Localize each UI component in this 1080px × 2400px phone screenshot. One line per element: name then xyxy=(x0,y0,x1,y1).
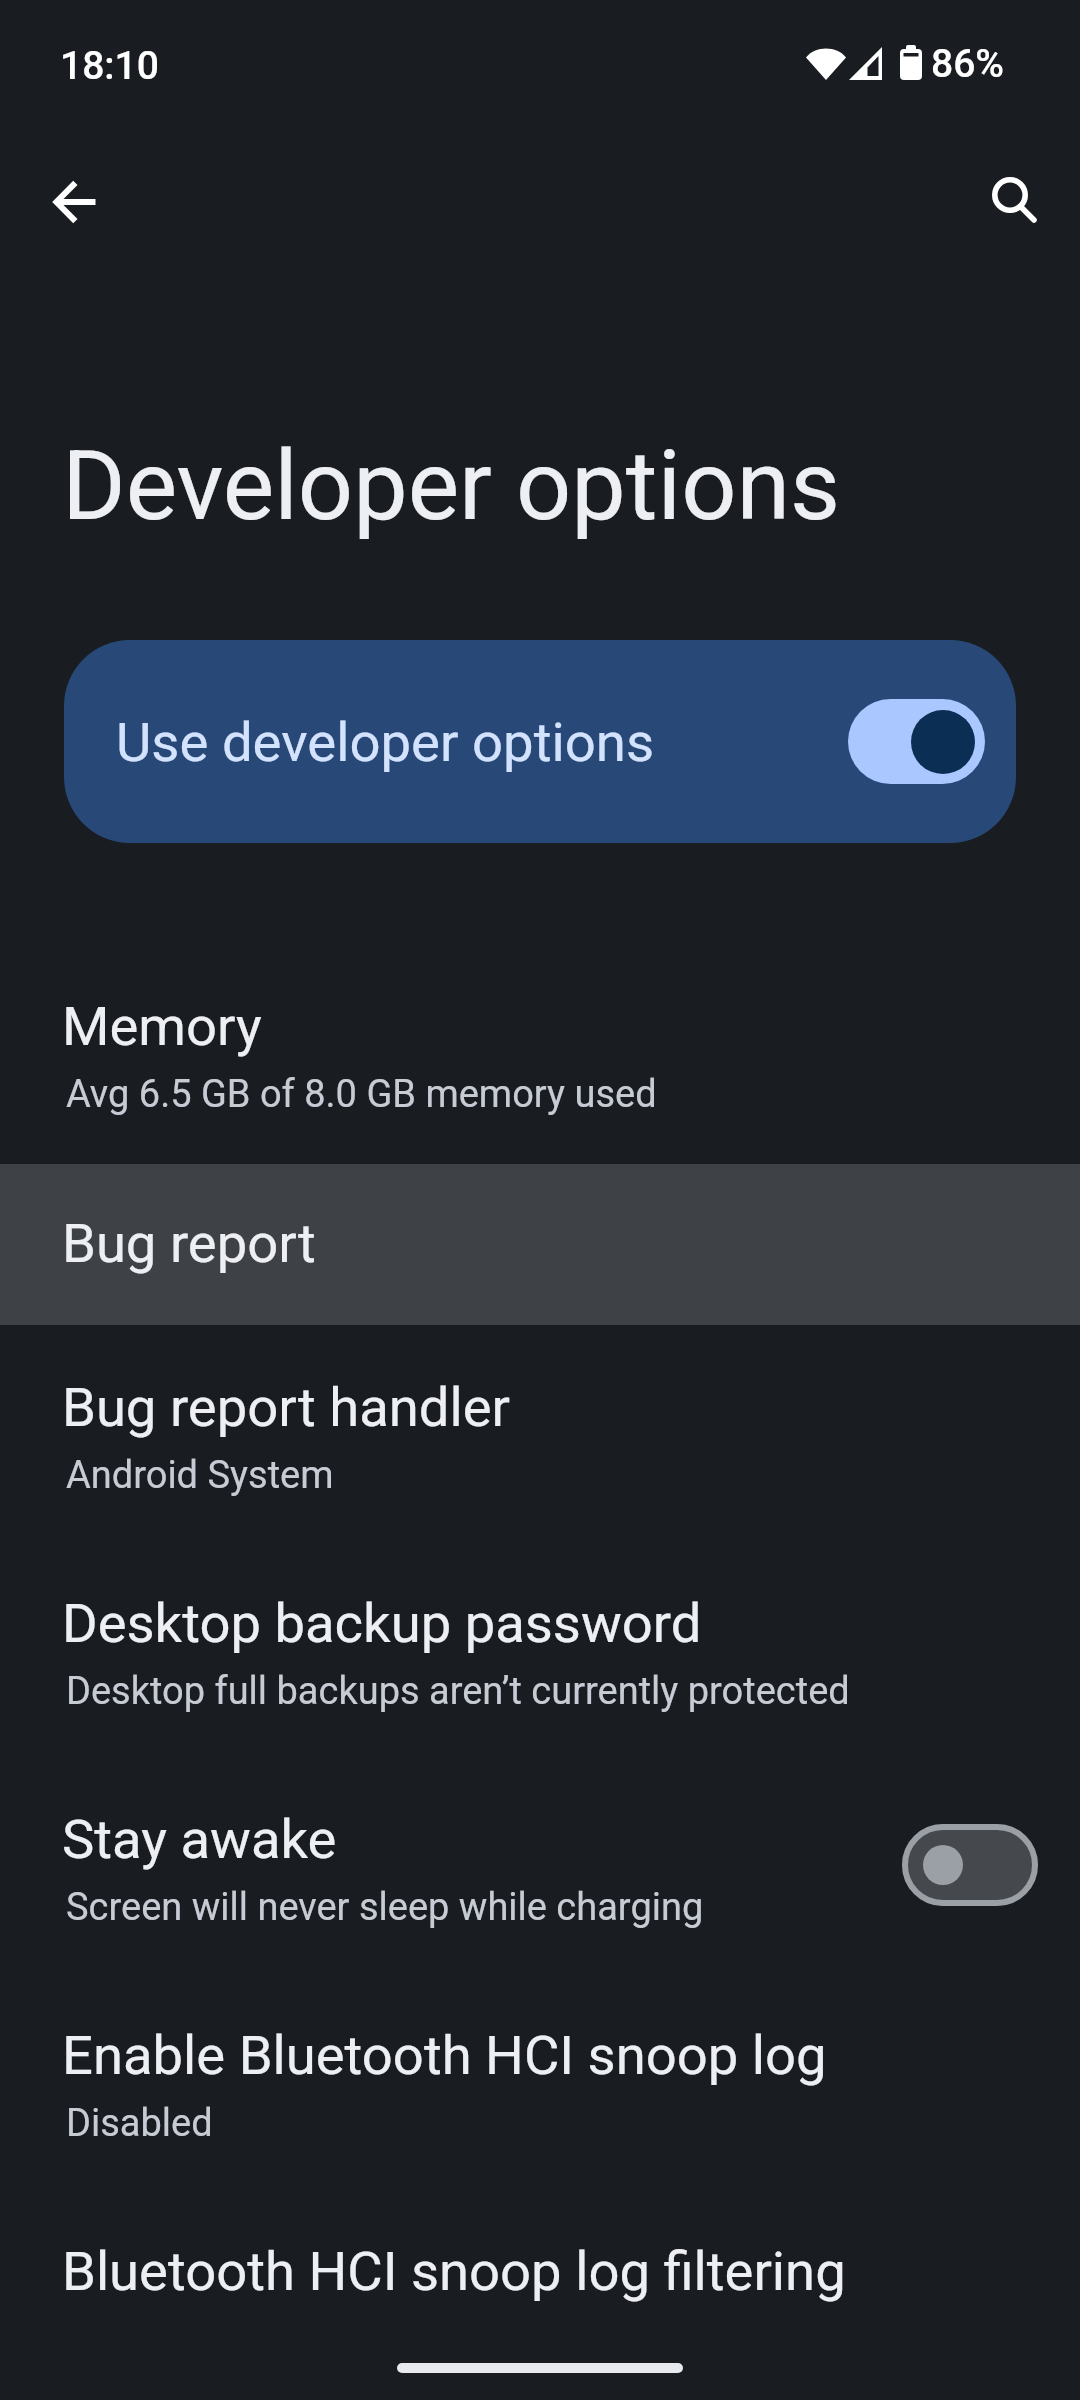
staticText: Disabled xyxy=(66,2101,213,2146)
staticText: Avg 6.5 GB of 8.0 GB memory used xyxy=(66,1072,657,1117)
button[interactable]: Enable Bluetooth HCI snoop log xyxy=(0,1973,1080,2189)
button[interactable]: Desktop backup password xyxy=(0,1541,1080,1757)
staticText: Stay awake xyxy=(62,1808,337,1872)
button[interactable]: Memory xyxy=(0,944,1080,1160)
staticText: Developer options xyxy=(62,429,841,543)
staticText: Screen will never sleep while charging xyxy=(66,1885,704,1930)
button[interactable]: Bug report handler xyxy=(0,1325,1080,1541)
staticText: Memory xyxy=(62,995,262,1059)
staticText: Bug report xyxy=(62,1212,316,1276)
button[interactable]: Use developer options xyxy=(64,640,1016,843)
staticText: 18:10 xyxy=(60,43,159,89)
staticText: Use developer options xyxy=(116,710,655,774)
staticText: Enable Bluetooth HCI snoop log xyxy=(62,2024,827,2088)
button[interactable]: Bluetooth HCI snoop log filtering xyxy=(0,2189,1080,2350)
button[interactable]: Bug report xyxy=(0,1161,1080,1322)
staticText: Desktop full backups aren’t currently pr… xyxy=(66,1669,850,1714)
staticText: Desktop backup password xyxy=(62,1592,702,1656)
staticText: Bug report handler xyxy=(62,1376,511,1440)
button[interactable]: Navigate up xyxy=(28,156,120,248)
staticText: 86% xyxy=(931,41,1005,87)
staticText: Android System xyxy=(66,1453,334,1498)
button[interactable]: Stay awake xyxy=(0,1757,1080,1973)
button[interactable]: Search xyxy=(968,154,1060,246)
staticText: Bluetooth HCI snoop log filtering xyxy=(62,2240,846,2304)
